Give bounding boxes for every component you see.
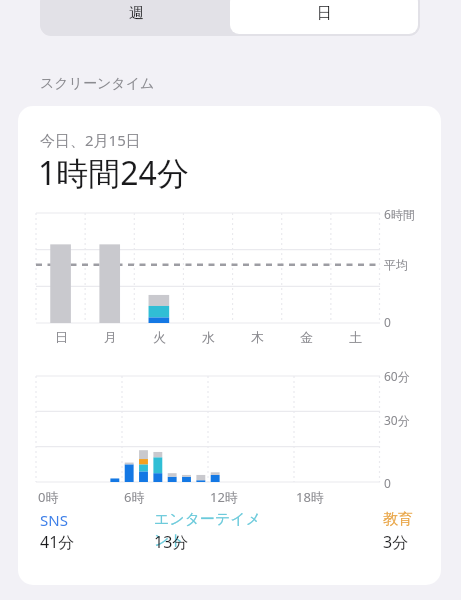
staticText: 土 (349, 329, 362, 345)
staticText: 12時 (210, 488, 238, 506)
staticText: 金 (300, 329, 313, 345)
button[interactable]: 週 (42, 0, 230, 34)
staticText: 週 (129, 4, 144, 23)
button[interactable]: 教育 (383, 510, 441, 558)
staticText: スクリーンタイム (40, 75, 155, 93)
staticText: エンターテイメント (154, 510, 274, 550)
staticText: 0 (384, 314, 391, 330)
staticText: 水 (202, 329, 215, 345)
staticText: 18時 (296, 488, 324, 506)
staticText: SNS (40, 510, 68, 530)
button[interactable]: エンターテイメント (154, 510, 274, 558)
button[interactable]: SNS (40, 510, 160, 558)
button[interactable]: 日 (230, 0, 418, 34)
staticText: 教育 (383, 510, 413, 529)
staticText: 火 (153, 329, 166, 345)
staticText: 木 (251, 329, 264, 345)
staticText: 日 (55, 329, 68, 345)
staticText: 1時間24分 (38, 151, 189, 195)
staticText: 平均 (384, 257, 408, 272)
staticText: 6時 (124, 488, 145, 506)
staticText: 41分 (40, 531, 75, 553)
button[interactable]: 今日、2月15日 (18, 106, 441, 585)
staticText: 今日、2月15日 (40, 130, 141, 150)
staticText: 60分 (384, 368, 410, 384)
staticText: 6時間 (384, 206, 415, 222)
staticText: 13分 (154, 531, 189, 553)
staticText: 30分 (384, 412, 410, 428)
staticText: 3分 (383, 531, 409, 553)
staticText: 0時 (38, 488, 59, 506)
staticText: 0 (384, 475, 391, 491)
staticText: 日 (317, 4, 332, 23)
staticText: 月 (104, 329, 117, 345)
